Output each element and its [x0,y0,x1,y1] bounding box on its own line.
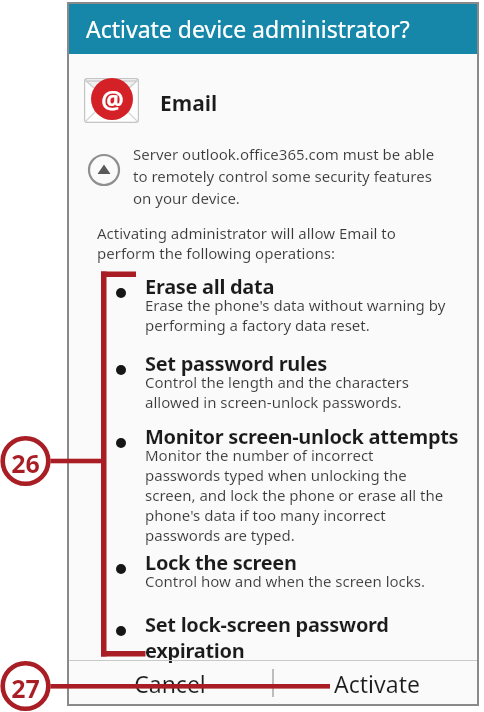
button[interactable] [88,154,120,186]
staticText: Lock the screen [145,549,297,576]
staticText: Erase the phone's data without warning b… [145,295,446,335]
staticText: 27 [11,671,40,705]
staticText: Set password rules [145,350,328,377]
staticText: Monitor the number of incorrect password… [145,445,444,545]
button[interactable]: Activate [274,661,479,706]
staticText: Activate [334,668,420,699]
staticText: Email [160,89,218,118]
button[interactable]: Cancel [67,661,272,706]
staticText: @ [101,82,124,116]
staticText: Set lock-screen password expiration [145,611,389,663]
staticText: Monitor screen-unlock attempts [145,423,459,450]
staticText: Cancel [134,668,206,699]
staticText: Control the length and the characters al… [145,372,409,412]
staticText: Control how and when the screen locks. [145,571,425,591]
staticText: Activate device administrator? [86,13,410,44]
staticText: Server outlook.office365.com must be abl… [133,144,435,209]
staticText: Activating administrator will allow Emai… [97,223,396,263]
staticText: Erase all data [145,273,275,300]
staticText: 26 [11,446,40,480]
